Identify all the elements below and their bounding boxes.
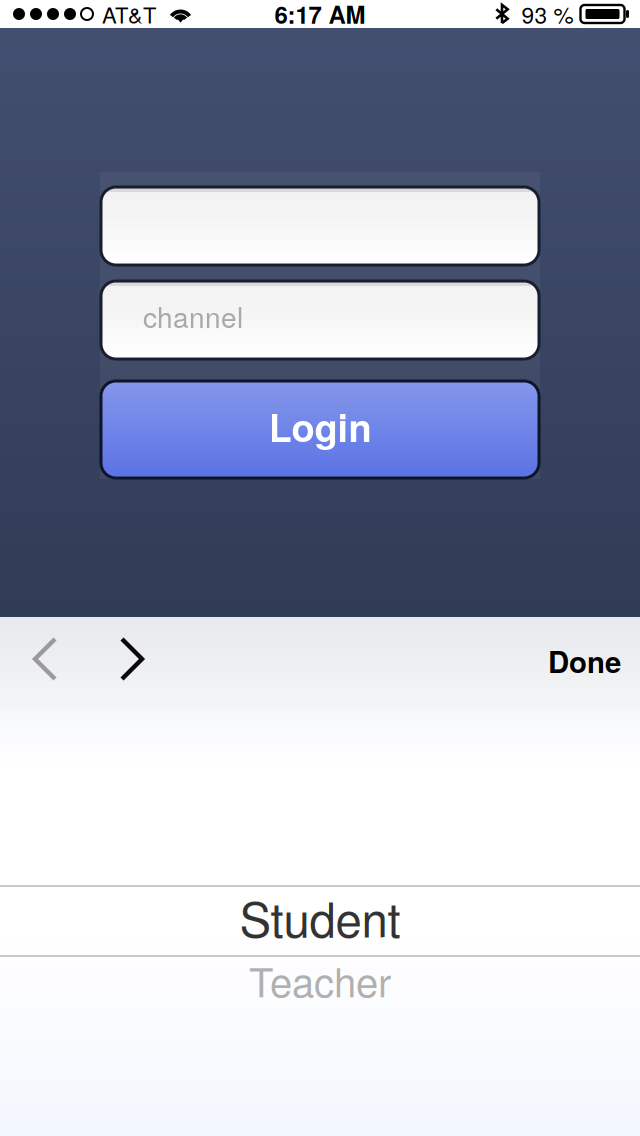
- staticText: Login: [268, 399, 371, 454]
- button[interactable]: Previous field: [1, 622, 89, 700]
- button[interactable]: Teacher: [0, 954, 640, 1006]
- button[interactable]: Done: [529, 617, 640, 705]
- staticText: Student: [239, 883, 400, 951]
- staticText: Done: [548, 640, 621, 682]
- button[interactable]: Student: [0, 882, 640, 952]
- staticText: AT&T: [102, 0, 156, 30]
- button[interactable]: Next field: [89, 622, 175, 700]
- button[interactable]: Login: [101, 381, 539, 478]
- staticText: Teacher: [249, 951, 391, 1009]
- staticText: channel: [143, 296, 243, 336]
- staticText: 93 %: [521, 0, 573, 30]
- staticText: 6:17 AM: [274, 0, 365, 31]
